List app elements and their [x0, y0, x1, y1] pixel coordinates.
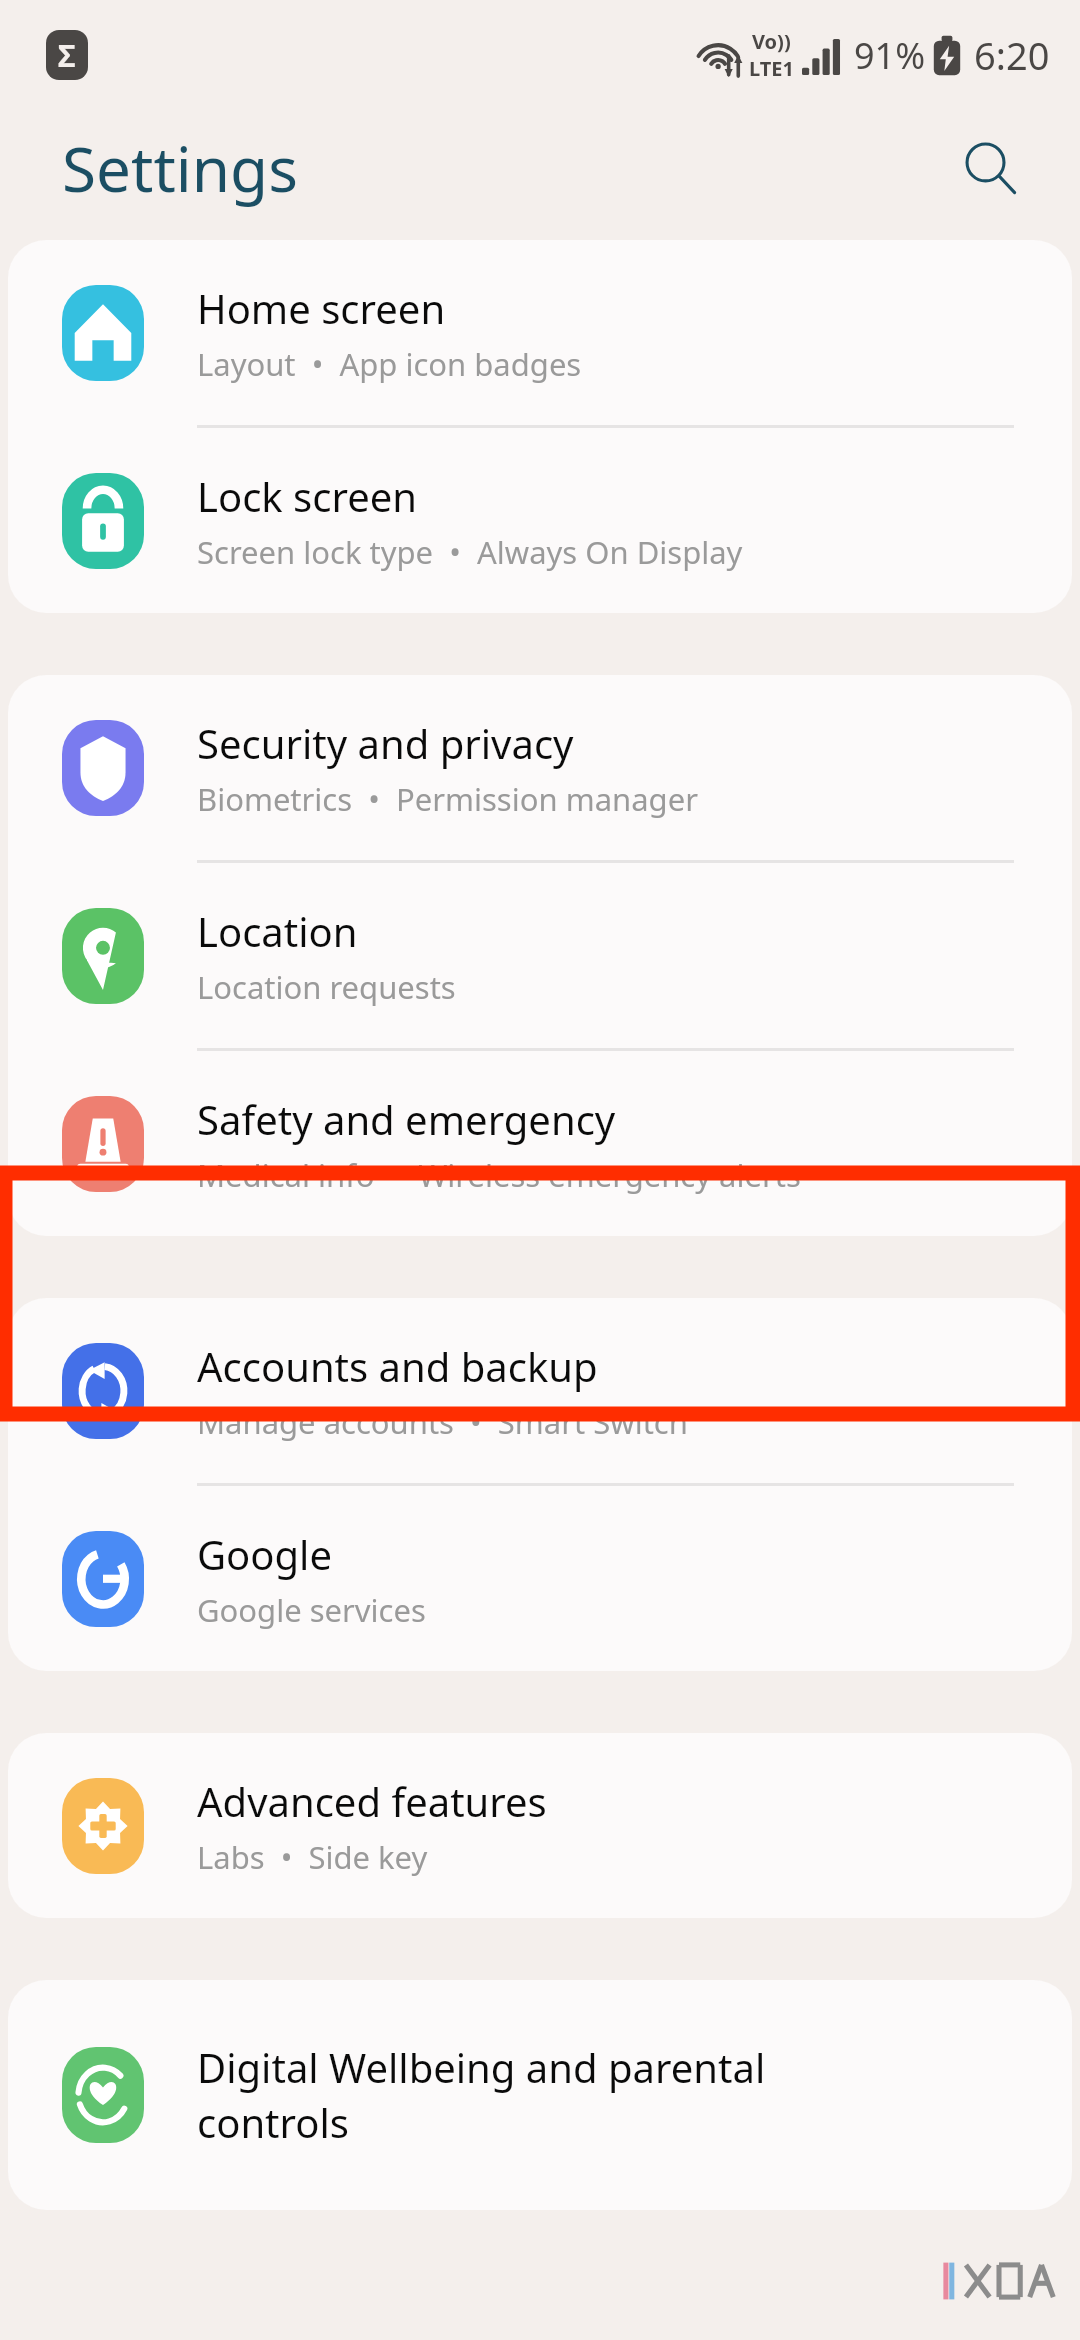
staticText: 91%: [854, 31, 926, 80]
staticText: Screen lock type • Always On Display: [197, 531, 743, 573]
staticText: Location requests: [197, 966, 456, 1008]
staticText: Safety and emergency: [197, 1092, 616, 1146]
staticText: Advanced features: [197, 1774, 547, 1828]
staticText: Settings: [62, 126, 298, 210]
staticText: Accounts and backup: [197, 1339, 598, 1393]
button[interactable]: Google: [8, 1486, 1072, 1671]
button[interactable]: Safety and emergency: [8, 1051, 1072, 1236]
staticText: Vo)): [752, 28, 791, 55]
staticText: 6:20: [974, 29, 1050, 81]
button[interactable]: Accounts and backup: [8, 1298, 1072, 1483]
staticText: Home screen: [197, 281, 446, 335]
staticText: Layout • App icon badges: [197, 343, 582, 385]
staticText: Location: [197, 904, 358, 958]
staticText: Medical info • Wireless emergency alerts: [197, 1154, 801, 1196]
staticText: Digital Wellbeing and parental controls: [197, 2040, 766, 2150]
staticText: Google: [197, 1527, 332, 1581]
button[interactable]: Location: [8, 863, 1072, 1048]
button[interactable]: Search: [950, 128, 1030, 208]
button[interactable]: Security and privacy: [8, 675, 1072, 860]
button[interactable]: Lock screen: [8, 428, 1072, 613]
staticText: Manage accounts • Smart Switch: [197, 1401, 688, 1443]
button[interactable]: Advanced features: [8, 1733, 1072, 1918]
staticText: Labs • Side key: [197, 1836, 428, 1878]
button[interactable]: Home screen: [8, 240, 1072, 425]
staticText: Σ: [58, 35, 76, 76]
button[interactable]: Digital Wellbeing and parental controls: [8, 1980, 1072, 2210]
staticText: Google services: [197, 1589, 426, 1631]
staticText: LTE1: [749, 55, 794, 82]
staticText: Security and privacy: [197, 716, 574, 770]
staticText: Biometrics • Permission manager: [197, 778, 698, 820]
staticText: Lock screen: [197, 469, 418, 523]
